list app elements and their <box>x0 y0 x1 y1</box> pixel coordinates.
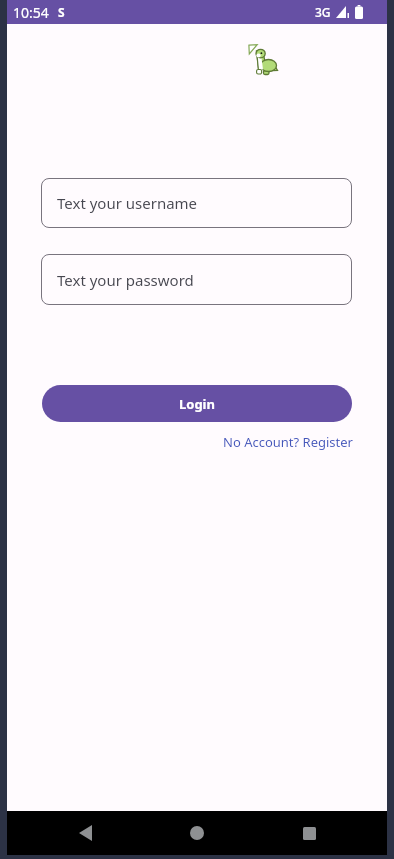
staticText: 10:54 <box>13 3 49 22</box>
button[interactable]: No Account? Register <box>223 433 353 451</box>
staticText: S <box>58 4 65 20</box>
staticText: Text your password <box>57 270 194 290</box>
button[interactable] <box>285 811 333 855</box>
button[interactable]: Text your password <box>41 254 352 305</box>
staticText: 3G <box>315 4 331 20</box>
staticText: Login <box>179 395 215 413</box>
button[interactable] <box>173 811 221 855</box>
staticText: Text your username <box>57 193 198 213</box>
button[interactable]: Text your username <box>41 178 352 228</box>
button[interactable]: Login <box>42 385 352 422</box>
button[interactable] <box>61 811 109 855</box>
